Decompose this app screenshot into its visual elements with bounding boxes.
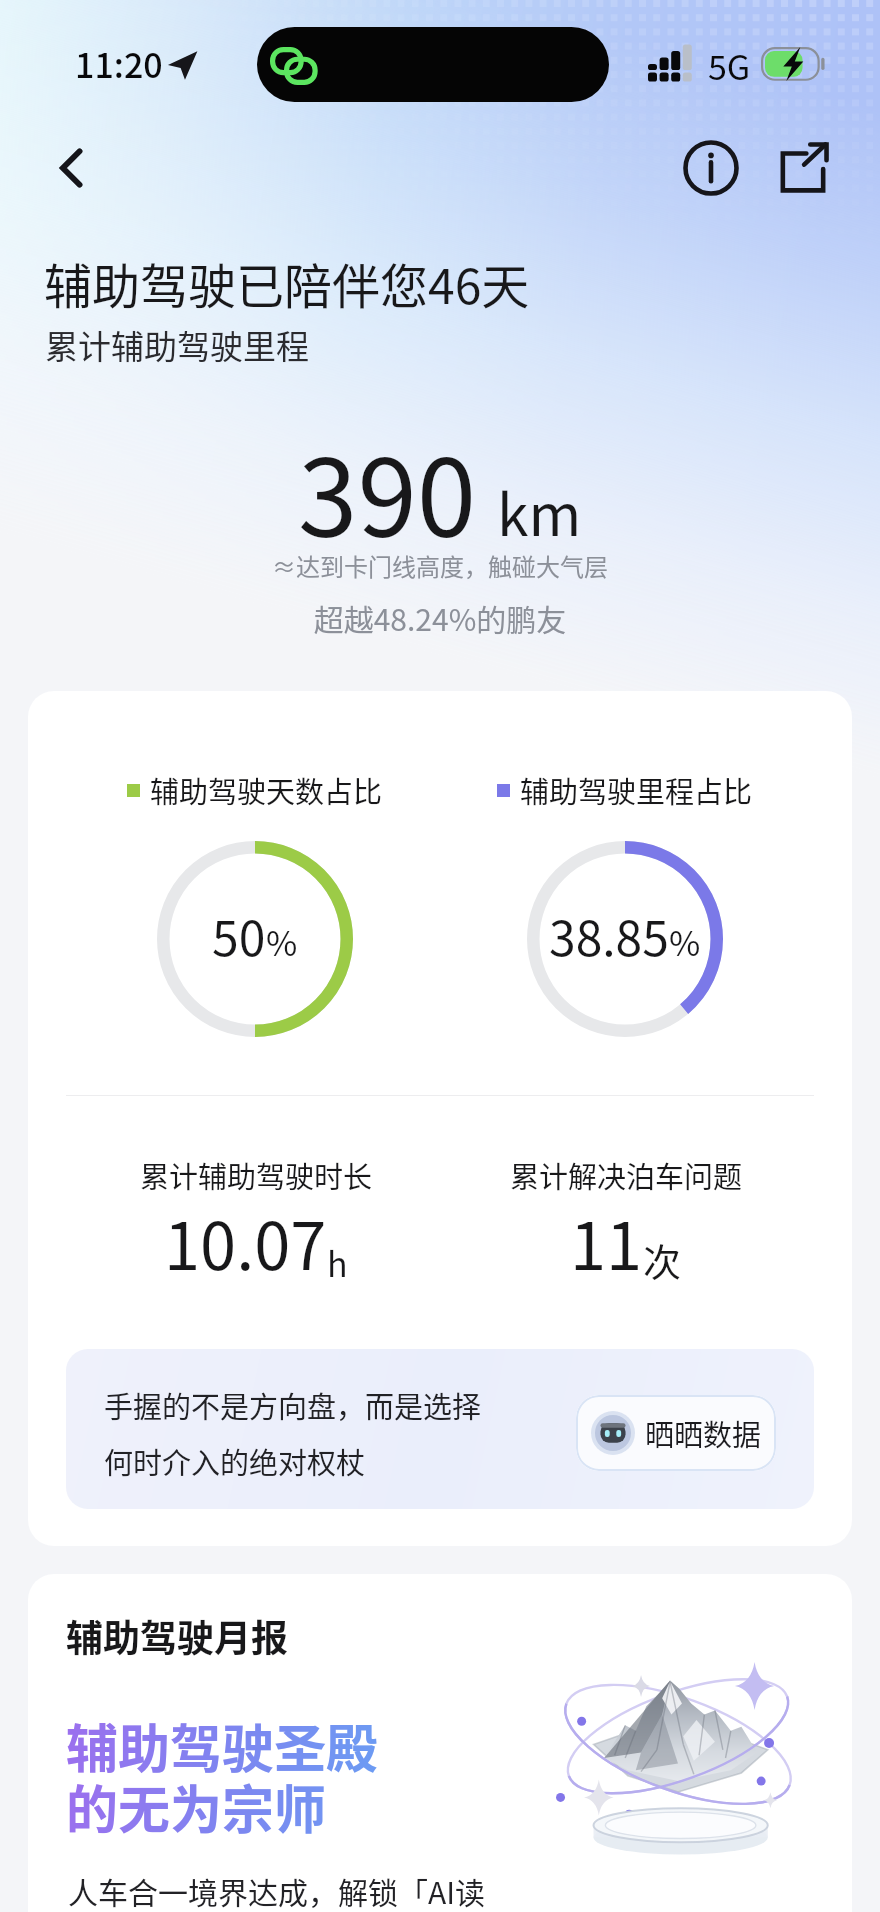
staticText: km — [497, 470, 582, 553]
staticText: 累计辅助驾驶里程 — [45, 321, 309, 369]
staticText: 何时介入的绝对权杖 — [104, 1440, 366, 1482]
staticText: 辅助驾驶天数占比 — [150, 769, 383, 811]
staticText: 次 — [643, 1232, 682, 1287]
staticText: 辅助驾驶月报 — [66, 1609, 288, 1663]
staticText: 辅助驾驶圣殿 — [66, 1708, 379, 1783]
staticText: 的无为宗师 — [66, 1769, 327, 1844]
staticText: 50 — [212, 900, 266, 970]
staticText: 10.07 — [164, 1195, 327, 1289]
button[interactable]: Info — [672, 129, 750, 207]
staticText: 390 — [298, 413, 477, 568]
staticText: 38.85 — [549, 900, 669, 970]
staticText: 累计解决泊车问题 — [510, 1154, 743, 1196]
staticText: 超越48.24%的鹏友 — [0, 596, 880, 639]
staticText: 辅助驾驶里程占比 — [520, 769, 753, 811]
button[interactable]: Back — [38, 134, 106, 202]
staticText: % — [266, 917, 298, 966]
staticText: 辅助驾驶已陪伴您46天 — [44, 248, 530, 318]
staticText: ≈达到卡门线高度，触碰大气层 — [0, 548, 880, 583]
staticText: 晒晒数据 — [645, 1412, 762, 1454]
staticText: 5G — [708, 41, 751, 90]
staticText: 手握的不是方向盘，而是选择 — [104, 1384, 482, 1426]
staticText: h — [327, 1238, 348, 1287]
staticText: 11:20 — [75, 39, 163, 88]
staticText: 人车合一境界达成，解锁「AI读 — [68, 1869, 486, 1912]
staticText: % — [669, 917, 701, 966]
button[interactable]: Share — [764, 129, 842, 207]
button[interactable]: 晒晒数据 — [576, 1395, 776, 1471]
staticText: 11 — [570, 1195, 643, 1289]
staticText: 累计辅助驾驶时长 — [140, 1154, 373, 1196]
